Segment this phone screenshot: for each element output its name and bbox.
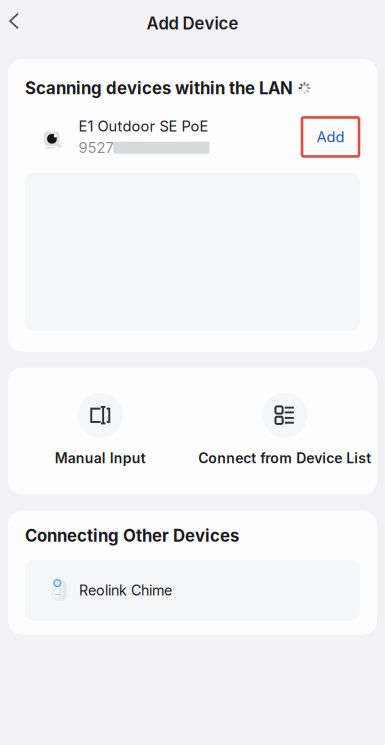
staticText: 9527 — [78, 139, 113, 157]
button[interactable]: Reolink Chime — [8, 546, 377, 635]
staticText: Connecting Other Devices — [25, 526, 239, 546]
staticText: E1 Outdoor SE PoE — [78, 117, 208, 135]
staticText: Manual Input — [55, 450, 146, 467]
staticText: Add — [316, 128, 344, 146]
staticText: Add Device — [146, 13, 238, 34]
staticText: Scanning devices within the LAN — [25, 78, 293, 98]
button[interactable]: Add — [302, 117, 359, 156]
staticText: Reolink Chime — [79, 582, 172, 599]
staticText: Connect from Device List — [198, 450, 371, 467]
button[interactable]: Manual Input — [8, 393, 192, 467]
button[interactable]: Back — [0, 6, 28, 36]
button[interactable]: Connect from Device List — [192, 393, 377, 467]
